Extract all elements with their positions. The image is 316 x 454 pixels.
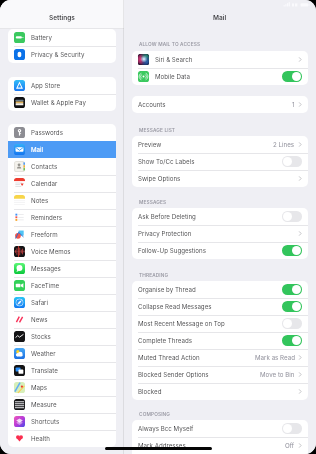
button[interactable]: Calendar [8, 175, 116, 192]
button[interactable]: Measure [8, 396, 116, 413]
button[interactable]: Preview [132, 136, 308, 153]
button[interactable]: Follow-Up Suggestions [132, 242, 308, 259]
staticText: Ask Before Deleting [138, 213, 196, 221]
button[interactable]: Translate [8, 362, 116, 379]
staticText: MESSAGES [139, 199, 167, 205]
button[interactable]: Blocked Sender Options [132, 366, 308, 383]
button[interactable]: Blocked [132, 383, 308, 400]
staticText: News [31, 316, 48, 324]
staticText: Privacy Protection [138, 230, 192, 238]
button[interactable]: Off [282, 211, 302, 222]
staticText: Passwords [31, 129, 63, 137]
staticText: Notes [31, 197, 49, 205]
button[interactable]: Notes [8, 192, 116, 209]
button[interactable]: Mobile Data [132, 68, 308, 85]
staticText: Shortcuts [31, 418, 60, 426]
button[interactable]: Mail [8, 141, 116, 158]
button[interactable]: Passwords [8, 124, 116, 141]
button[interactable]: Swipe Options [132, 170, 308, 187]
staticText: Off [285, 442, 295, 450]
button[interactable]: Privacy & Security [8, 46, 116, 63]
staticText: Battery [31, 34, 52, 42]
staticText: THREADING [139, 272, 169, 278]
button[interactable]: Wallet & Apple Pay [8, 94, 116, 111]
button[interactable]: On [282, 71, 302, 82]
button[interactable]: Complete Threads [132, 332, 308, 349]
button[interactable]: Off [282, 318, 302, 329]
button[interactable]: Organise by Thread [132, 281, 308, 298]
staticText: Reminders [31, 214, 63, 222]
button[interactable]: Ask Before Deleting [132, 208, 308, 225]
staticText: Blocked Sender Options [138, 371, 209, 379]
staticText: Translate [31, 367, 58, 375]
staticText: Move to Bin [260, 371, 295, 379]
staticText: Settings [49, 14, 75, 22]
button[interactable]: Show To/Cc Labels [132, 153, 308, 170]
staticText: ALLOW MAIL TO ACCESS [139, 41, 201, 47]
staticText: Collapse Read Messages [138, 303, 212, 311]
button[interactable]: News [8, 311, 116, 328]
button[interactable]: Accounts [132, 96, 308, 113]
button[interactable]: Health [8, 430, 116, 447]
button[interactable]: Reminders [8, 209, 116, 226]
button[interactable]: Off [282, 423, 302, 434]
button[interactable]: Contacts [8, 158, 116, 175]
staticText: Muted Thread Action [138, 354, 200, 362]
staticText: COMPOSING [139, 411, 171, 417]
staticText: Follow-Up Suggestions [138, 247, 207, 255]
staticText: 1 [292, 101, 295, 109]
staticText: Complete Threads [138, 337, 192, 345]
staticText: Mark as Read [255, 354, 295, 362]
staticText: Measure [31, 401, 57, 409]
staticText: Voice Memos [31, 248, 71, 256]
staticText: App Store [31, 82, 61, 90]
staticText: Contacts [31, 163, 58, 171]
button[interactable]: Muted Thread Action [132, 349, 308, 366]
staticText: Mark Addresses [138, 442, 186, 450]
button[interactable]: Messages [8, 260, 116, 277]
button[interactable]: On [282, 301, 302, 312]
button[interactable]: On [282, 245, 302, 256]
staticText: Mobile Data [155, 73, 190, 81]
staticText: MESSAGE LIST [139, 127, 176, 133]
button[interactable]: App Store [8, 77, 116, 94]
staticText: Preview [138, 141, 162, 149]
staticText: Most Recent Message on Top [138, 320, 225, 328]
button[interactable]: Safari [8, 294, 116, 311]
button[interactable]: Maps [8, 379, 116, 396]
staticText: Health [31, 435, 51, 443]
button[interactable]: Off [282, 156, 302, 167]
button[interactable]: Weather [8, 345, 116, 362]
staticText: Swipe Options [138, 175, 181, 183]
staticText: Maps [31, 384, 48, 392]
staticText: Always Bcc Myself [138, 425, 194, 433]
button[interactable]: Freeform [8, 226, 116, 243]
button[interactable]: Stocks [8, 328, 116, 345]
button[interactable]: Mark Addresses [132, 437, 308, 454]
button[interactable]: Shortcuts [8, 413, 116, 430]
staticText: Mail [31, 146, 44, 154]
staticText: Mail [213, 14, 227, 22]
staticText: Stocks [31, 333, 51, 341]
staticText: Freeform [31, 231, 58, 239]
staticText: Privacy & Security [31, 51, 85, 59]
staticText: Wallet & Apple Pay [31, 99, 86, 107]
staticText: Calendar [31, 180, 58, 188]
staticText: Show To/Cc Labels [138, 158, 195, 166]
button[interactable]: Voice Memos [8, 243, 116, 260]
button[interactable]: Collapse Read Messages [132, 298, 308, 315]
button[interactable]: Siri & Search [132, 51, 308, 68]
staticText: Messages [31, 265, 61, 273]
button[interactable]: On [282, 284, 302, 295]
staticText: Organise by Thread [138, 286, 196, 294]
staticText: 2 Lines [273, 141, 295, 149]
button[interactable]: FaceTime [8, 277, 116, 294]
button[interactable]: On [282, 335, 302, 346]
button[interactable]: Privacy Protection [132, 225, 308, 242]
staticText: Weather [31, 350, 56, 358]
button[interactable]: Battery [8, 29, 116, 46]
staticText: Siri & Search [155, 56, 193, 64]
button[interactable]: Most Recent Message on Top [132, 315, 308, 332]
staticText: FaceTime [31, 282, 60, 290]
button[interactable]: Always Bcc Myself [132, 420, 308, 437]
